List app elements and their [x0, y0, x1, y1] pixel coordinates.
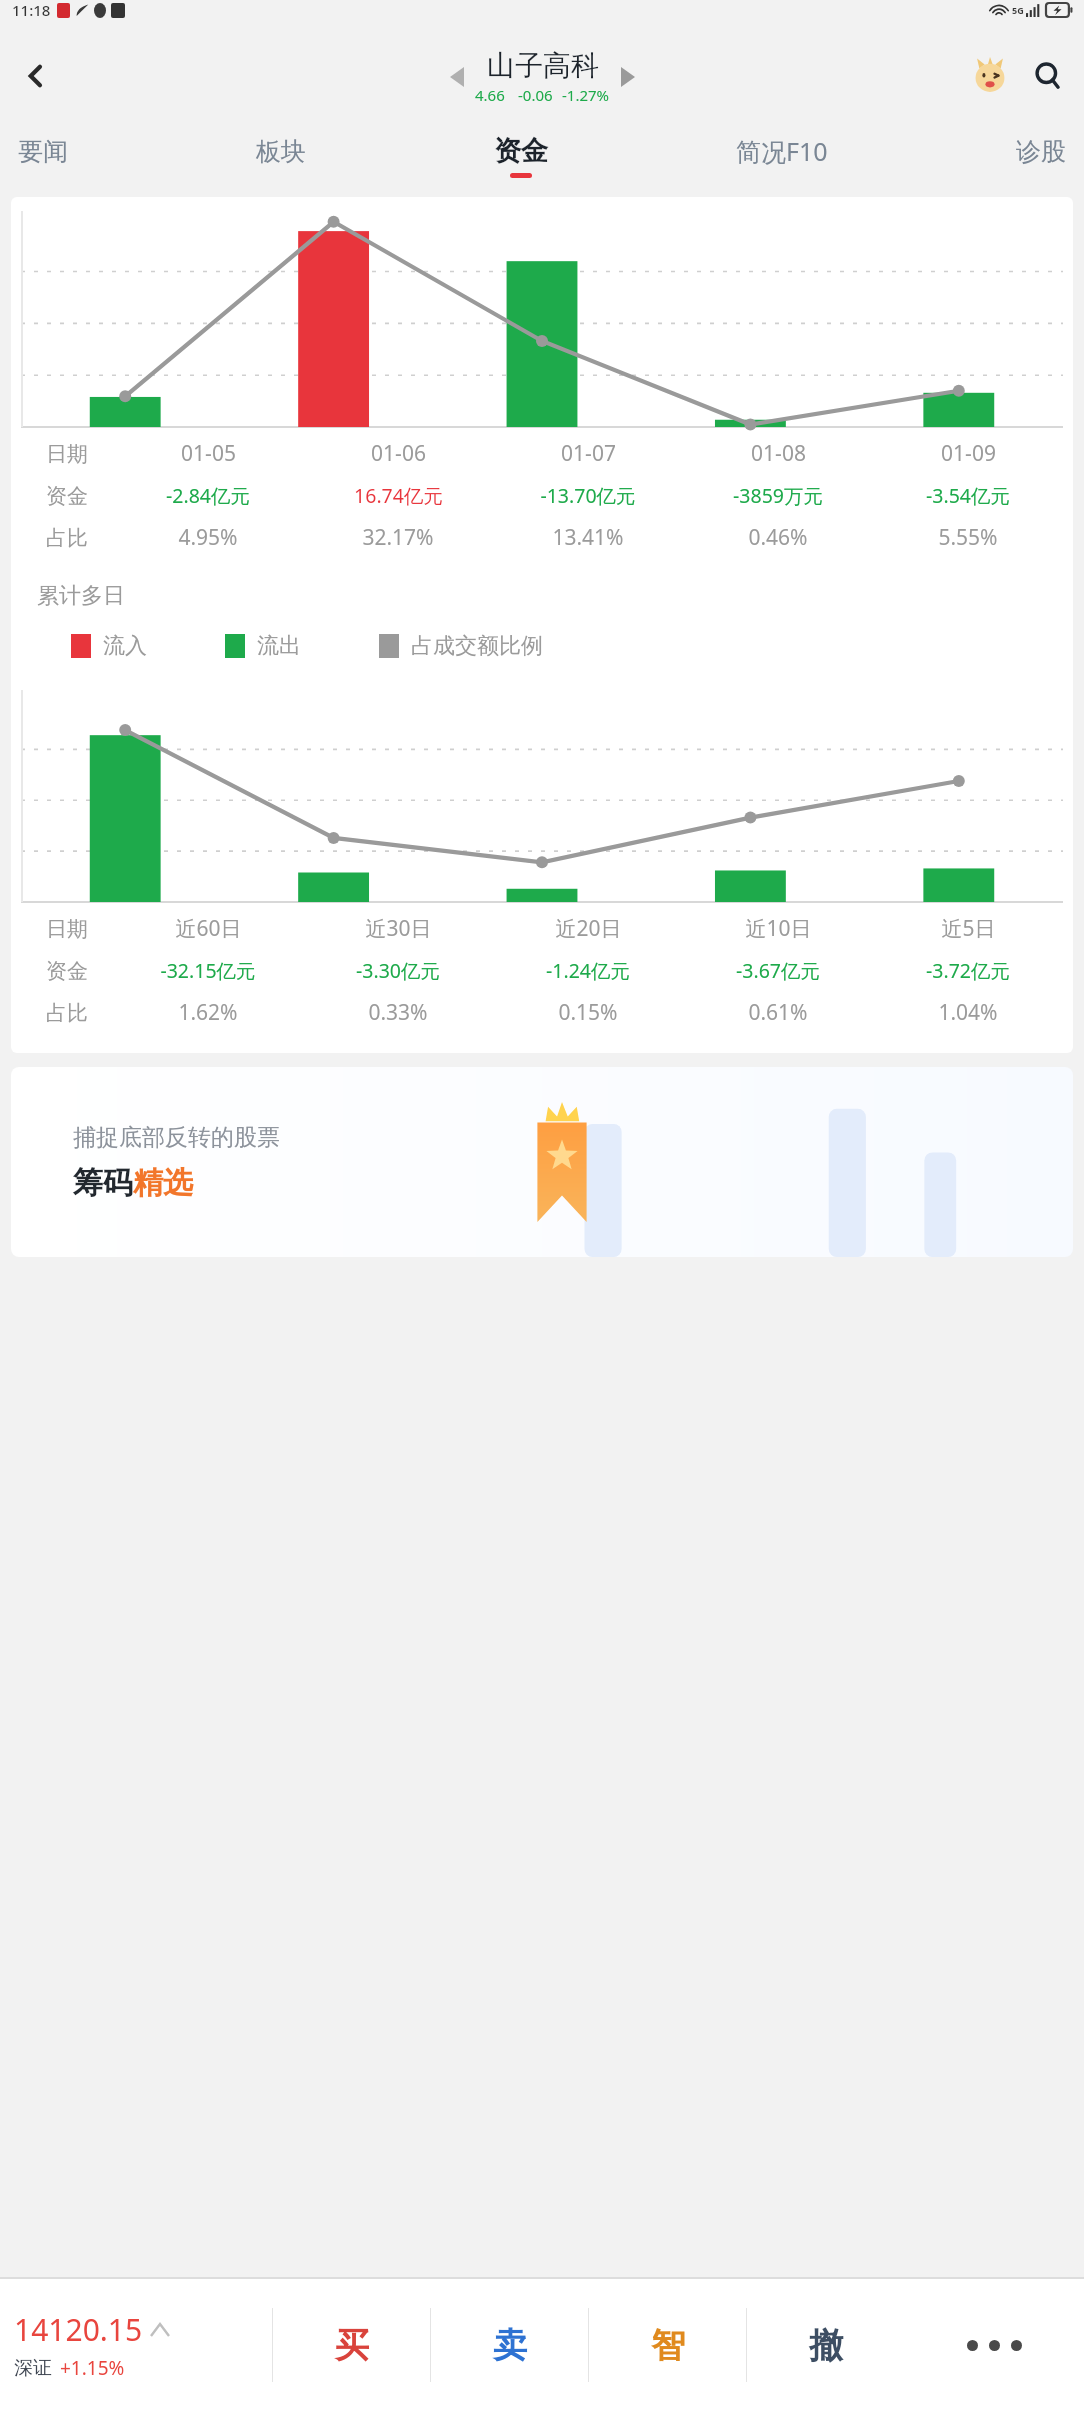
staticText: 01-08	[751, 439, 806, 468]
staticText: 近60日	[175, 914, 242, 943]
button[interactable]: 板块	[252, 118, 310, 194]
staticText: -3.54亿元	[926, 482, 1010, 509]
staticText: -1.24亿元	[546, 957, 630, 984]
staticText: 日期	[46, 441, 88, 467]
staticText: -1.27%	[562, 85, 610, 105]
button[interactable]: Back	[8, 48, 64, 104]
staticText: -0.06	[518, 85, 553, 105]
staticText: 近30日	[365, 914, 432, 943]
staticText: 01-09	[941, 439, 996, 468]
staticText: 简况F10	[736, 134, 828, 168]
staticText: 买	[335, 2324, 369, 2367]
staticText: 筹码	[73, 1164, 133, 1202]
staticText: 诊股	[1016, 136, 1066, 167]
staticText: -3.30亿元	[356, 957, 440, 984]
staticText: 深证	[14, 2356, 52, 2380]
button[interactable]: 买	[273, 2278, 430, 2412]
staticText: 32.17%	[362, 523, 434, 552]
button[interactable]: 要闻	[14, 118, 72, 194]
staticText: -3.72亿元	[926, 957, 1010, 984]
staticText: 14120.15	[14, 2309, 143, 2350]
staticText: 近10日	[745, 914, 812, 943]
staticText: 0.61%	[748, 998, 808, 1027]
staticText: 0.33%	[368, 998, 428, 1027]
staticText: +1.15%	[60, 2355, 125, 2381]
staticText: -13.70亿元	[540, 482, 636, 509]
staticText: 1.62%	[178, 998, 238, 1027]
staticText: 16.74亿元	[354, 482, 443, 509]
staticText: 捕捉底部反转的股票	[73, 1123, 280, 1152]
button[interactable]: More	[904, 2278, 1084, 2412]
button[interactable]: 14120.15	[0, 2278, 272, 2412]
staticText: 0.46%	[748, 523, 808, 552]
staticText: 01-07	[561, 439, 616, 468]
staticText: 4.95%	[178, 523, 238, 552]
staticText: 1.04%	[938, 998, 998, 1027]
staticText: 资金	[46, 958, 88, 984]
button[interactable]: 诊股	[1012, 118, 1070, 194]
button[interactable]: Next stock	[610, 59, 646, 95]
button[interactable]: Assistant	[964, 50, 1016, 102]
button[interactable]: 撤	[747, 2278, 904, 2412]
button[interactable]: 简况F10	[732, 118, 832, 194]
staticText: 0.15%	[558, 998, 618, 1027]
staticText: 山子高科	[487, 48, 599, 83]
button[interactable]: Previous stock	[439, 59, 475, 95]
staticText: -3.67亿元	[736, 957, 820, 984]
staticText: 占成交额比例	[411, 632, 543, 660]
staticText: 5.55%	[938, 523, 998, 552]
staticText: 撤	[809, 2324, 843, 2367]
staticText: 占比	[46, 525, 88, 551]
staticText: -32.15亿元	[160, 957, 256, 984]
button[interactable]: Search	[1022, 50, 1074, 102]
staticText: 01-05	[181, 439, 236, 468]
staticText: 精选	[133, 1164, 193, 1202]
staticText: 4.66	[475, 85, 505, 105]
staticText: 资金	[494, 134, 548, 168]
staticText: 资金	[46, 483, 88, 509]
staticText: 近20日	[555, 914, 622, 943]
staticText: 智	[651, 2324, 685, 2367]
staticText: 累计多日	[37, 582, 125, 610]
staticText: 01-06	[371, 439, 426, 468]
staticText: 近5日	[941, 914, 996, 943]
staticText: 占比	[46, 1000, 88, 1026]
button[interactable]: 捕捉底部反转的股票	[11, 1067, 1073, 1257]
staticText: 5G	[1012, 4, 1024, 16]
staticText: 要闻	[18, 136, 68, 167]
button[interactable]: 智	[589, 2278, 746, 2412]
button[interactable]: 卖	[431, 2278, 588, 2412]
staticText: 11:18	[12, 0, 51, 20]
staticText: 流出	[257, 632, 301, 660]
staticText: 日期	[46, 916, 88, 942]
staticText: -2.84亿元	[166, 482, 250, 509]
staticText: 卖	[493, 2324, 527, 2367]
staticText: -3859万元	[733, 482, 823, 509]
button[interactable]: 资金	[490, 118, 552, 194]
staticText: 流入	[103, 632, 147, 660]
staticText: 13.41%	[552, 523, 624, 552]
staticText: 板块	[256, 136, 306, 167]
